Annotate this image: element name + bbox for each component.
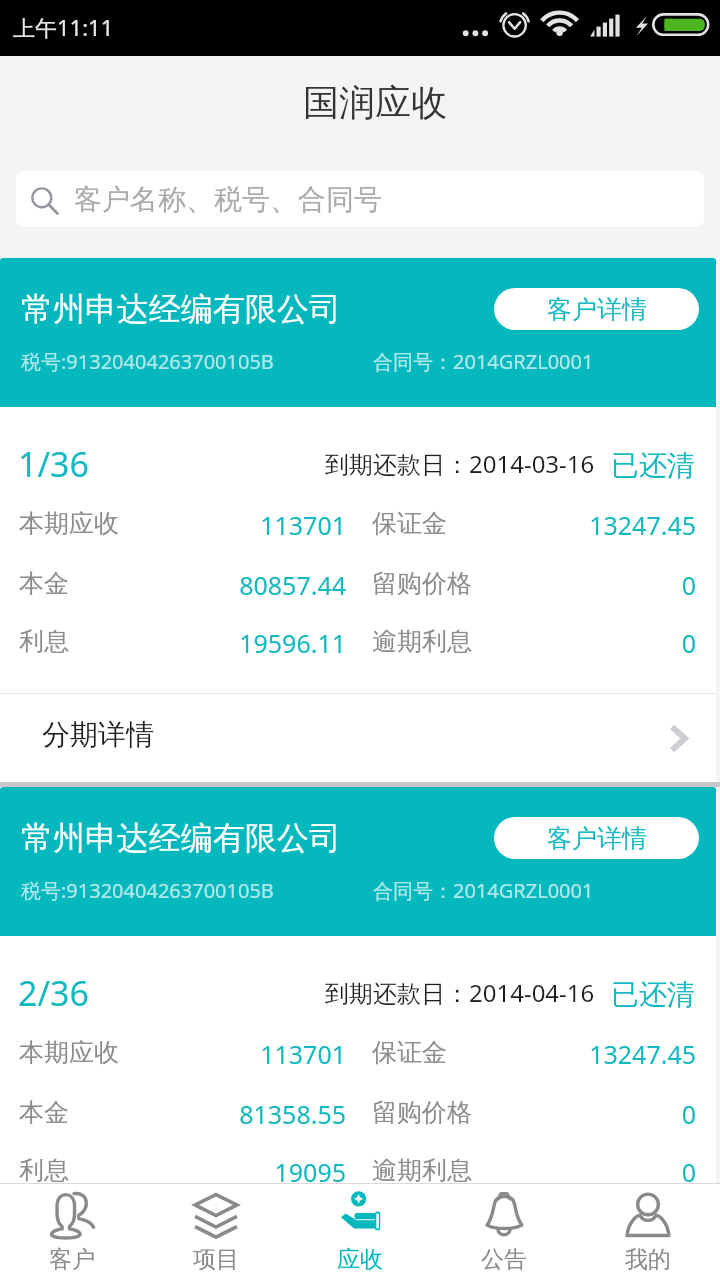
button[interactable]: 应收 xyxy=(288,1184,432,1280)
staticText: 常州申达经编有限公司 xyxy=(21,818,341,858)
staticText: 合同号：2014GRZL0001 xyxy=(373,877,594,904)
staticText: 税号:91320404263700105B xyxy=(21,348,274,375)
staticText: 19596.11 xyxy=(0,626,346,660)
button[interactable]: 客户名称、税号、合同号 xyxy=(16,171,704,227)
staticText: 利息 xyxy=(19,1155,69,1186)
staticText: 国润应收 xyxy=(303,80,447,125)
staticText: 客户 xyxy=(49,1245,95,1274)
staticText: 合同号：2014GRZL0001 xyxy=(373,348,594,375)
other: 公告 xyxy=(481,1192,527,1239)
staticText: 本期应收 xyxy=(19,508,119,539)
staticText: 分期详情 xyxy=(42,717,154,752)
staticText: 80857.44 xyxy=(0,568,346,602)
staticText: 逾期利息 xyxy=(372,1155,472,1186)
staticText: 13247.45 xyxy=(0,1037,696,1071)
staticText: 留购价格 xyxy=(372,1097,472,1128)
staticText: 我的 xyxy=(625,1245,671,1274)
staticText: 客户详情 xyxy=(547,823,647,854)
button[interactable]: 客户详情 xyxy=(494,288,699,330)
staticText: 应收 xyxy=(337,1245,383,1274)
staticText: 0 xyxy=(0,1155,696,1189)
staticText: 113701 xyxy=(0,1037,346,1071)
button[interactable]: 我的 xyxy=(576,1184,720,1280)
button[interactable]: 客户详情 xyxy=(494,817,699,859)
staticText: 19095 xyxy=(0,1155,346,1189)
staticText: 0 xyxy=(0,626,696,660)
button[interactable]: 客户 xyxy=(0,1184,144,1280)
button[interactable]: 项目 xyxy=(144,1184,288,1280)
other: 客户 xyxy=(49,1192,95,1239)
staticText: 上午11:11 xyxy=(13,12,114,42)
staticText: 0 xyxy=(0,568,696,602)
staticText: 客户名称、税号、合同号 xyxy=(74,182,382,217)
other: 我的 xyxy=(625,1192,671,1239)
staticText: 0 xyxy=(0,1097,696,1131)
staticText: 到期还款日：2014-04-16 xyxy=(325,976,595,1009)
staticText: 税号:91320404263700105B xyxy=(21,877,274,904)
staticText: 113701 xyxy=(0,508,346,542)
staticText: 已还清 xyxy=(611,977,695,1012)
staticText: 利息 xyxy=(19,626,69,657)
staticText: 客户详情 xyxy=(547,294,647,325)
staticText: 公告 xyxy=(481,1245,527,1274)
staticText: 13247.45 xyxy=(0,508,696,542)
other: 应收 xyxy=(337,1192,383,1239)
staticText: 常州申达经编有限公司 xyxy=(21,289,341,329)
staticText: 本金 xyxy=(19,1097,69,1128)
staticText: 保证金 xyxy=(372,508,447,539)
staticText: 逾期利息 xyxy=(372,626,472,657)
button[interactable]: 分期详情 xyxy=(0,1223,716,1280)
staticText: 留购价格 xyxy=(372,568,472,599)
staticText: 到期还款日：2014-03-16 xyxy=(325,447,595,480)
staticText: 本期应收 xyxy=(19,1037,119,1068)
button[interactable]: 公告 xyxy=(432,1184,576,1280)
staticText: 2/36 xyxy=(18,970,89,1016)
staticText: 81358.55 xyxy=(0,1097,346,1131)
button[interactable]: 分期详情 xyxy=(0,694,716,782)
staticText: 已还清 xyxy=(611,448,695,483)
staticText: 分期详情 xyxy=(42,1230,154,1265)
other: 项目 xyxy=(193,1192,239,1239)
staticText: 保证金 xyxy=(372,1037,447,1068)
staticText: 项目 xyxy=(193,1245,239,1274)
staticText: 1/36 xyxy=(18,441,89,487)
staticText: 本金 xyxy=(19,568,69,599)
